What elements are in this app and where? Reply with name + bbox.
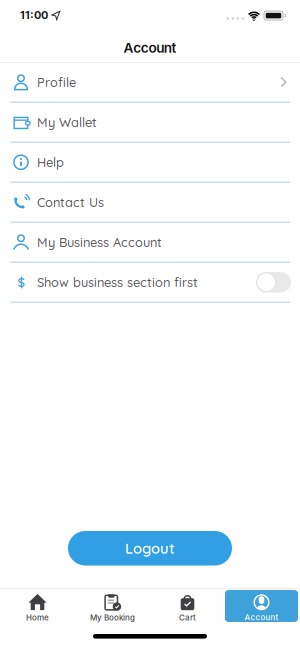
staticText: $ bbox=[17, 274, 24, 290]
staticText: Home bbox=[26, 613, 49, 622]
staticText: Contact Us bbox=[37, 194, 104, 210]
staticText: Account bbox=[123, 39, 176, 56]
staticText: Cart bbox=[179, 613, 196, 622]
staticText: Account bbox=[244, 612, 278, 622]
staticText: Profile bbox=[37, 74, 76, 90]
staticText: My Booking bbox=[90, 613, 135, 622]
staticText: Help bbox=[37, 154, 64, 170]
staticText: My Wallet bbox=[37, 114, 97, 130]
staticText: Logout bbox=[125, 539, 175, 557]
staticText: 11:00 bbox=[20, 8, 48, 22]
staticText: Show business section first bbox=[37, 274, 198, 290]
staticText: My Business Account bbox=[37, 234, 162, 250]
